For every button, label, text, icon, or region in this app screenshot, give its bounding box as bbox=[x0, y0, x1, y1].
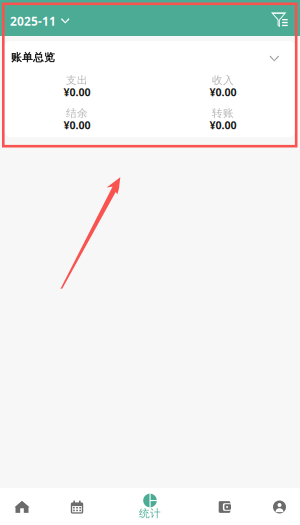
button[interactable]: 2025-11 bbox=[0, 0, 77, 36]
staticText: 账单总览 bbox=[11, 51, 55, 64]
button[interactable]: Home bbox=[0, 488, 44, 525]
button[interactable]: Assets bbox=[190, 488, 259, 525]
staticText: 转账 bbox=[212, 107, 234, 120]
staticText: ¥0.00 bbox=[63, 85, 90, 99]
staticText: 结余 bbox=[66, 107, 88, 120]
button[interactable]: 统计 bbox=[110, 488, 190, 525]
button[interactable]: Filter bbox=[263, 0, 300, 36]
staticText: 支出 bbox=[66, 74, 88, 87]
staticText: ¥0.00 bbox=[209, 118, 236, 132]
staticText: ¥0.00 bbox=[209, 85, 236, 99]
staticText: 收入 bbox=[212, 74, 234, 87]
staticText: 统计 bbox=[139, 507, 161, 520]
staticText: 2025-11 bbox=[10, 13, 56, 29]
button[interactable]: Calendar bbox=[44, 488, 110, 525]
button[interactable]: Profile bbox=[259, 488, 300, 525]
staticText: ¥0.00 bbox=[63, 118, 90, 132]
